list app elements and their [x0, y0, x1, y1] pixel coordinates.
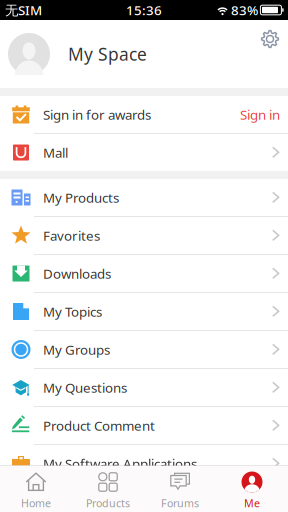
staticText: Forums	[161, 496, 199, 510]
staticText: Home	[21, 496, 51, 510]
staticText: My Products	[43, 189, 119, 206]
button[interactable]: More	[0, 483, 288, 512]
button[interactable]: Downloads	[0, 255, 288, 292]
button[interactable]: Sign in for awards	[0, 96, 288, 133]
staticText: 83%	[231, 1, 258, 19]
button[interactable]: Home	[0, 466, 72, 512]
staticText: More	[43, 493, 76, 510]
button[interactable]: Forums	[144, 466, 216, 512]
staticText: My Topics	[43, 303, 102, 320]
staticText: My Questions	[43, 379, 127, 396]
button[interactable]: Product Comment	[0, 407, 288, 444]
staticText: My Groups	[43, 341, 110, 358]
button[interactable]: Favorites	[0, 217, 288, 254]
staticText: Product Comment	[43, 417, 155, 434]
staticText: 无SIM	[5, 1, 42, 19]
button[interactable]: My Products	[0, 179, 288, 216]
staticText: Favorites	[43, 227, 100, 244]
staticText: 15:36	[126, 1, 162, 19]
button[interactable]: My Software Applications	[0, 445, 288, 482]
staticText: Products	[86, 496, 130, 510]
button[interactable]: My Topics	[0, 293, 288, 330]
staticText: My Software Applications	[43, 455, 197, 472]
button[interactable]: Settings	[257, 26, 283, 52]
button[interactable]: Products	[72, 466, 144, 512]
staticText: Sign in	[240, 106, 280, 123]
button[interactable]: My Questions	[0, 369, 288, 406]
button[interactable]: Mall	[0, 134, 288, 171]
staticText: Me	[244, 496, 260, 510]
staticText: Mall	[43, 144, 68, 161]
staticText: My Space	[68, 42, 147, 65]
button[interactable]: Me	[216, 466, 288, 512]
staticText: Downloads	[43, 265, 111, 282]
staticText: Sign in for awards	[43, 106, 151, 123]
button[interactable]: My Groups	[0, 331, 288, 368]
